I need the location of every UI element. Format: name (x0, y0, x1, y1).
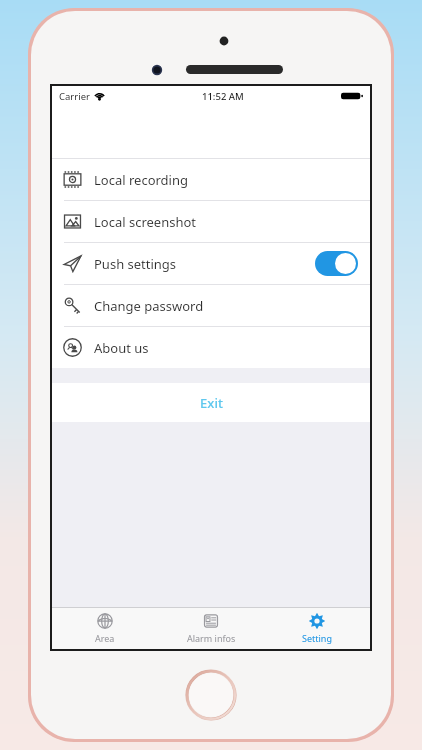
staticText: Local recording (94, 171, 188, 189)
staticText: Area (95, 632, 115, 644)
staticText: Push settings (94, 255, 177, 273)
staticText: About us (94, 339, 149, 357)
button[interactable]: Exit (52, 383, 370, 422)
staticText: Change password (94, 297, 204, 315)
button[interactable]: Change password (52, 285, 370, 326)
staticText: 11:52 AM (202, 90, 244, 103)
staticText: Alarm infos (187, 632, 236, 644)
button[interactable]: About us (52, 327, 370, 368)
staticText: Carrier (59, 90, 90, 103)
button[interactable]: Setting (264, 608, 370, 649)
button[interactable]: Area (52, 608, 158, 649)
staticText: Local screenshot (94, 213, 197, 231)
button[interactable]: Local screenshot (52, 201, 370, 242)
staticText: Setting (302, 632, 332, 644)
button[interactable]: Local recording (52, 159, 370, 200)
button[interactable]: Alarm infos (158, 608, 264, 649)
button[interactable]: Push settings (52, 243, 370, 284)
button[interactable]: Push settings toggle (315, 251, 358, 276)
staticText: Exit (200, 394, 223, 412)
